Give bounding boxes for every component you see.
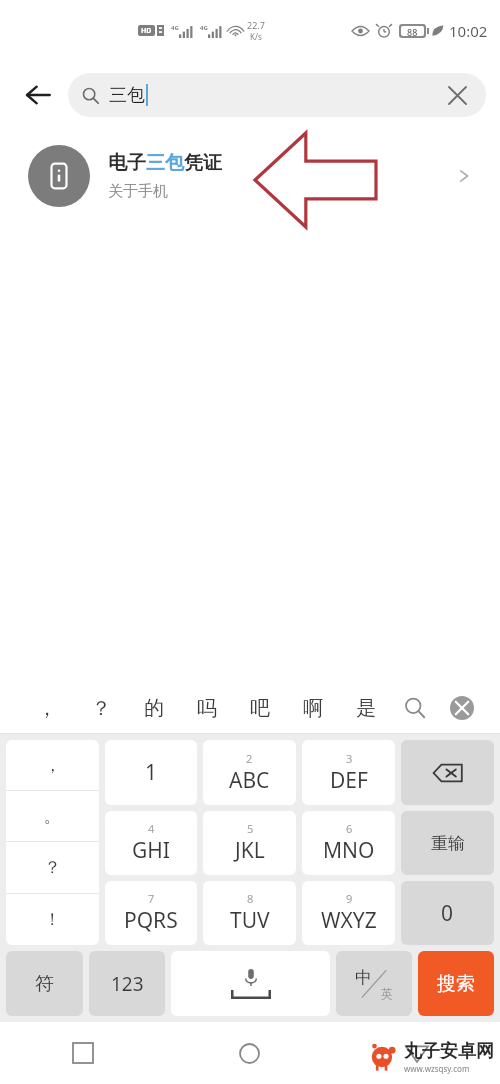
button[interactable]: ，: [20, 682, 74, 734]
button[interactable]: 是: [339, 682, 392, 734]
staticText: DEF: [330, 766, 368, 795]
staticText: www.wzsqsy.com: [404, 1063, 470, 1074]
button[interactable]: 重输: [401, 811, 494, 875]
staticText: 啊: [303, 696, 323, 721]
staticText: 8: [247, 891, 254, 906]
staticText: ，: [44, 755, 61, 776]
staticText: 88: [407, 26, 418, 36]
button[interactable]: Back: [333, 1022, 500, 1084]
button[interactable]: 的: [127, 682, 180, 734]
staticText: 中: [355, 967, 372, 988]
button[interactable]: 符: [6, 951, 83, 1016]
staticText: ABC: [229, 766, 270, 795]
button[interactable]: Search: [392, 682, 438, 734]
staticText: 9: [346, 891, 353, 906]
staticText: ！: [44, 909, 61, 930]
staticText: ？: [44, 857, 61, 878]
staticText: 4: [148, 821, 155, 836]
button[interactable]: 2: [203, 740, 296, 805]
staticText: HD: [141, 26, 152, 36]
button[interactable]: 搜索: [418, 951, 494, 1016]
button[interactable]: ？: [6, 842, 99, 893]
staticText: 10:02: [449, 21, 488, 41]
staticText: 是: [356, 696, 376, 721]
staticText: ，: [37, 696, 57, 721]
staticText: 7: [148, 891, 155, 906]
staticText: 。: [44, 806, 61, 827]
staticText: JKL: [235, 836, 265, 865]
staticText: 6: [346, 821, 353, 836]
staticText: 123: [111, 971, 144, 997]
staticText: 吗: [197, 696, 217, 721]
staticText: 22.7: [247, 19, 265, 31]
button[interactable]: 啊: [286, 682, 339, 734]
button[interactable]: Clear: [442, 80, 472, 110]
button[interactable]: ！: [6, 894, 99, 945]
staticText: 关于手机: [108, 182, 168, 201]
staticText: 搜索: [437, 972, 475, 996]
staticText: 0: [441, 899, 454, 928]
button[interactable]: 5: [203, 811, 296, 875]
button[interactable]: 7: [105, 881, 197, 945]
staticText: 1: [145, 758, 158, 787]
staticText: 英: [381, 986, 393, 1001]
button[interactable]: 电子三包凭证: [0, 130, 500, 222]
button[interactable]: 4: [105, 811, 197, 875]
button[interactable]: ，: [6, 740, 99, 790]
staticText: 2: [246, 751, 253, 766]
button[interactable]: Backspace: [401, 740, 494, 805]
staticText: 吧: [250, 696, 270, 721]
button[interactable]: 吧: [233, 682, 286, 734]
button[interactable]: 3: [302, 740, 395, 805]
staticText: 重输: [431, 833, 465, 854]
staticText: 4G: [200, 24, 208, 32]
staticText: TUV: [230, 906, 270, 935]
staticText: ？: [91, 696, 111, 721]
staticText: 电子三包凭证: [108, 151, 222, 175]
button[interactable]: Recents: [0, 1022, 166, 1084]
button[interactable]: 1: [105, 740, 197, 805]
button[interactable]: Close keyboard: [438, 682, 486, 734]
staticText: 4G: [171, 24, 179, 32]
staticText: MNO: [323, 836, 375, 865]
button[interactable]: Back: [14, 71, 62, 119]
staticText: WXYZ: [321, 906, 377, 935]
staticText: 丸子安卓网: [404, 1040, 494, 1063]
staticText: K/s: [250, 31, 262, 42]
staticText: 符: [35, 972, 54, 996]
button[interactable]: Space: [171, 951, 330, 1016]
staticText: PQRS: [124, 906, 178, 935]
button[interactable]: ？: [74, 682, 127, 734]
button[interactable]: 9: [302, 881, 395, 945]
button[interactable]: 三包: [68, 73, 486, 117]
button[interactable]: 吗: [180, 682, 233, 734]
button[interactable]: Home: [166, 1022, 333, 1084]
staticText: GHI: [132, 836, 170, 865]
staticText: 5: [247, 821, 254, 836]
button[interactable]: 0: [401, 881, 494, 945]
button[interactable]: 。: [6, 791, 99, 841]
button[interactable]: 中: [336, 951, 412, 1016]
button[interactable]: 8: [203, 881, 296, 945]
staticText: 的: [144, 696, 164, 721]
staticText: 三包: [109, 84, 145, 107]
button[interactable]: 6: [302, 811, 395, 875]
staticText: 3: [346, 751, 353, 766]
button[interactable]: 123: [89, 951, 165, 1016]
